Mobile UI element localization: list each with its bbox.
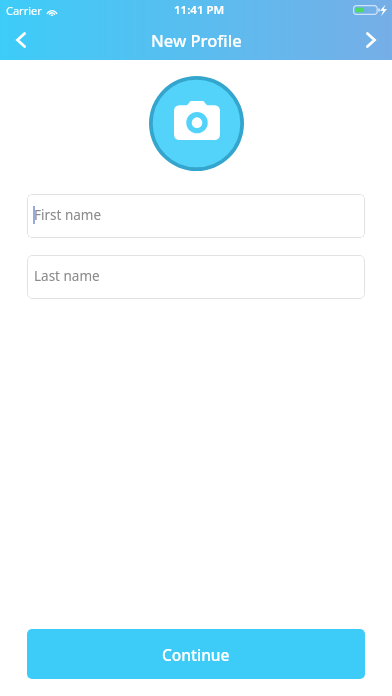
- button[interactable]: First name: [27, 194, 365, 238]
- staticText: 11:41 PM: [174, 2, 225, 18]
- button[interactable]: Back: [0, 20, 41, 60]
- staticText: Last name: [34, 267, 100, 285]
- button[interactable]: Add photo: [149, 76, 244, 171]
- button[interactable]: Next: [349, 20, 392, 60]
- staticText: Continue: [162, 644, 230, 665]
- staticText: Carrier: [6, 3, 42, 18]
- button[interactable]: Continue: [27, 629, 365, 679]
- button[interactable]: Last name: [27, 255, 365, 299]
- staticText: New Profile: [151, 29, 242, 51]
- staticText: First name: [34, 206, 102, 224]
